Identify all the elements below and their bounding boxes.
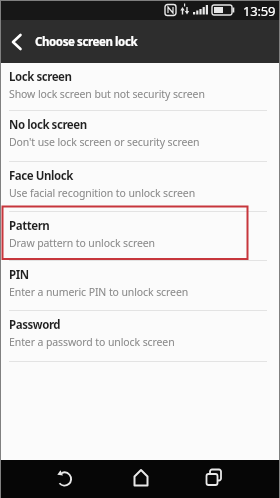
staticText: Draw pattern to unlock screen (9, 236, 155, 250)
button[interactable] (119, 460, 163, 498)
staticText: Password (9, 317, 61, 333)
staticText: Don't use lock screen or security screen (9, 135, 200, 149)
staticText: 13:59 (243, 2, 276, 20)
button[interactable]: Password (1, 311, 279, 362)
staticText: Use facial recognition to unlock screen (9, 186, 196, 200)
staticText: Face Unlock (9, 168, 73, 184)
staticText: Lock screen (9, 69, 72, 85)
staticText: Enter a password to unlock screen (9, 335, 175, 349)
staticText: No lock screen (9, 117, 87, 133)
button[interactable] (1, 20, 31, 63)
button[interactable]: Pattern (1, 212, 279, 261)
staticText: Show lock screen but not security screen (9, 87, 205, 101)
button[interactable]: Face Unlock (1, 162, 279, 212)
button[interactable]: No lock screen (1, 111, 279, 162)
staticText: Enter a numeric PIN to unlock screen (9, 285, 189, 299)
staticText: Choose screen lock (35, 34, 138, 50)
staticText: Pattern (9, 218, 50, 234)
button[interactable]: Lock screen (1, 63, 279, 111)
staticText: PIN (9, 267, 29, 283)
button[interactable] (191, 460, 235, 498)
button[interactable] (42, 460, 86, 498)
button[interactable]: PIN (1, 261, 279, 311)
